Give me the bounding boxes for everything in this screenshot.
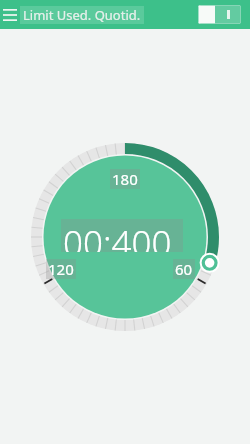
staticText: 60 xyxy=(175,259,193,279)
staticText: 180 xyxy=(112,169,138,189)
staticText: Limit Used. Quotid. xyxy=(23,6,141,24)
button[interactable]: Toggle timer xyxy=(198,5,241,24)
button[interactable]: Timer dial, 00:40 remaining xyxy=(29,141,221,333)
staticText: 00:400 xyxy=(63,219,172,252)
staticText: 120 xyxy=(48,259,74,279)
button[interactable]: Open navigation menu xyxy=(0,3,20,27)
